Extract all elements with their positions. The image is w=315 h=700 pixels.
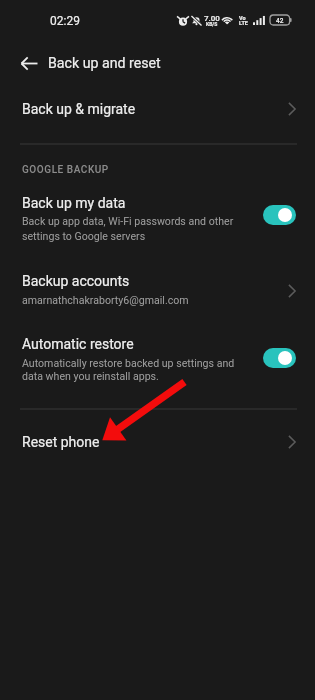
button[interactable]: Back [15,49,43,77]
staticText: Automatic restore [22,336,134,352]
button[interactable]: Back up & migrate [0,90,315,128]
staticText: GOOGLE BACKUP [22,164,109,176]
staticText: data when you reinstall apps. [22,370,159,382]
button[interactable]: Toggle [263,348,296,368]
staticText: Back up and reset [48,55,161,72]
staticText: Automatically restore backed up settings… [22,357,235,369]
button[interactable]: Automatic restore [0,328,315,390]
staticText: LTE [239,20,248,26]
staticText: Back up my data [22,195,126,211]
staticText: 7.00 [204,14,220,23]
staticText: 02:29 [50,14,80,28]
button[interactable]: Backup accounts [0,264,315,312]
staticText: Back up app data, Wi-Fi passwords and ot… [22,215,234,227]
button[interactable]: Back up my data [0,186,315,248]
staticText: KB/S [206,21,218,27]
staticText: Backup accounts [22,273,130,289]
button[interactable]: Toggle [263,205,296,225]
button[interactable]: Reset phone [0,424,315,462]
staticText: settings to Google servers [22,230,146,242]
staticText: Back up & migrate [22,101,136,117]
staticText: amarnathchakraborty6@gmail.com [22,294,189,306]
staticText: 42 [276,17,284,25]
staticText: Vo [239,15,246,21]
staticText: Reset phone [22,434,100,450]
